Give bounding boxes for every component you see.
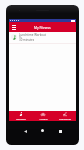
- button[interactable]: Running: [9, 111, 32, 121]
- button[interactable]: Open navigation drawer: [10, 24, 17, 31]
- button[interactable]: Cycling: [32, 111, 54, 121]
- staticText: 30 minutes: [19, 38, 35, 41]
- staticText: Lunchtime Workout: [19, 33, 46, 36]
- staticText: My Fitness: [34, 25, 51, 29]
- staticText: Cycling: [39, 117, 48, 120]
- button[interactable]: Swimming: [54, 111, 76, 121]
- button[interactable]: Lunchtime Workout: [9, 32, 76, 44]
- staticText: 5k: [19, 36, 22, 38]
- button[interactable]: Recent apps: [59, 130, 62, 133]
- button[interactable]: Home: [41, 129, 44, 132]
- staticText: Swimming: [59, 117, 71, 120]
- staticText: Running: [16, 117, 26, 120]
- button[interactable]: Back: [24, 130, 27, 133]
